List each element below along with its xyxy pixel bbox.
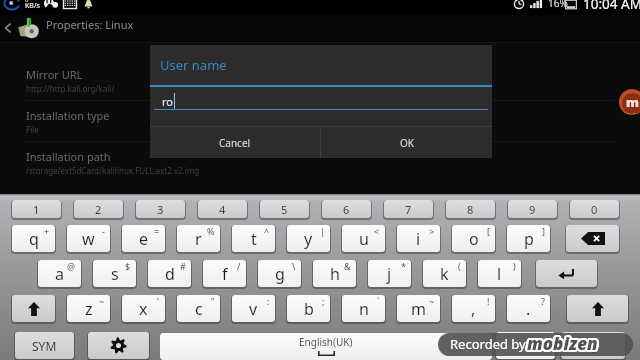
staticText: mobizen bbox=[527, 333, 598, 353]
staticText: c bbox=[195, 298, 203, 320]
staticText: \ bbox=[292, 260, 296, 272]
staticText: ' bbox=[157, 295, 160, 307]
button[interactable]: h bbox=[313, 260, 356, 287]
staticText: u bbox=[359, 228, 369, 250]
staticText: * bbox=[401, 260, 406, 272]
button[interactable]: 6 bbox=[322, 200, 371, 218]
button[interactable]: 3 bbox=[136, 200, 185, 218]
button[interactable]: Mobizen recorder bbox=[619, 89, 640, 115]
button[interactable]: y bbox=[287, 225, 330, 252]
button[interactable]: i bbox=[397, 225, 440, 252]
staticText: p bbox=[524, 228, 534, 250]
button[interactable]: g bbox=[258, 260, 301, 287]
button[interactable]: l bbox=[478, 260, 521, 287]
button[interactable]: Shift bbox=[12, 295, 55, 322]
button[interactable]: d bbox=[148, 260, 191, 287]
staticText: 3 bbox=[157, 202, 164, 217]
button[interactable]: 4 bbox=[198, 200, 247, 218]
staticText: http://http.kali.org/kali/ bbox=[26, 83, 115, 94]
staticText: % bbox=[207, 225, 215, 237]
staticText: 7 bbox=[405, 202, 412, 217]
staticText: ~ bbox=[429, 295, 435, 307]
button[interactable]: Space bbox=[160, 333, 492, 360]
staticText: v bbox=[249, 298, 258, 320]
button[interactable]: SYM bbox=[15, 332, 74, 359]
button[interactable]: f bbox=[203, 260, 246, 287]
staticText: KB/s bbox=[25, 1, 40, 11]
staticText: o bbox=[469, 228, 479, 250]
staticText: / bbox=[237, 260, 241, 272]
staticText: d bbox=[165, 263, 175, 285]
staticText: mobizen bbox=[526, 333, 597, 355]
button[interactable]: Backspace bbox=[566, 225, 619, 252]
staticText: . bbox=[526, 298, 531, 320]
button[interactable]: q bbox=[12, 225, 55, 252]
button[interactable]: 7 bbox=[384, 200, 433, 218]
staticText: Installation type bbox=[26, 108, 110, 123]
button[interactable]: a bbox=[38, 260, 81, 287]
button[interactable]: Input settings bbox=[88, 332, 149, 359]
button[interactable]: 1 bbox=[12, 200, 61, 218]
staticText: mobizen bbox=[525, 333, 596, 354]
button[interactable]: m bbox=[397, 295, 440, 322]
staticText: Mirror URL bbox=[26, 67, 83, 82]
staticText: 6 bbox=[343, 202, 350, 217]
staticText: & bbox=[344, 260, 351, 272]
button[interactable]: 9 bbox=[508, 200, 557, 218]
staticText: f bbox=[222, 263, 228, 285]
button[interactable]: . bbox=[507, 295, 550, 322]
button[interactable]: Voice input bbox=[561, 332, 625, 359]
staticText: | bbox=[320, 225, 325, 237]
button[interactable]: w bbox=[67, 225, 110, 252]
staticText: = bbox=[154, 225, 160, 237]
button[interactable]: n bbox=[342, 295, 385, 322]
button[interactable]: j bbox=[368, 260, 411, 287]
button[interactable]: u bbox=[342, 225, 385, 252]
button[interactable]: k bbox=[423, 260, 466, 287]
button[interactable]: s bbox=[93, 260, 136, 287]
button[interactable]: t bbox=[232, 225, 275, 252]
staticText: y bbox=[304, 228, 313, 250]
button[interactable]: 2 bbox=[74, 200, 123, 218]
button[interactable]: Navigate up bbox=[1, 21, 14, 34]
staticText: mobizen bbox=[528, 333, 599, 354]
button[interactable]: OK bbox=[321, 127, 492, 158]
staticText: e bbox=[139, 228, 149, 250]
staticText: mobizen bbox=[528, 334, 599, 356]
button[interactable]: e bbox=[122, 225, 165, 252]
staticText: ^ bbox=[264, 225, 270, 237]
staticText: mobizen bbox=[527, 333, 598, 355]
button[interactable]: b bbox=[287, 295, 330, 322]
staticText: ? bbox=[541, 295, 545, 307]
button[interactable]: o bbox=[452, 225, 495, 252]
staticText: mobizen bbox=[529, 333, 600, 354]
staticText: $ bbox=[125, 260, 131, 272]
button[interactable]: 5 bbox=[260, 200, 309, 218]
button[interactable]: Cancel bbox=[150, 127, 320, 158]
button[interactable]: Enter bbox=[536, 260, 597, 287]
staticText: 2:43 bbox=[627, 111, 639, 114]
button[interactable]: p bbox=[507, 225, 550, 252]
staticText: @ bbox=[67, 260, 76, 272]
button[interactable]: Shift bbox=[567, 295, 628, 322]
staticText: x bbox=[139, 298, 148, 320]
staticText: t bbox=[251, 228, 257, 250]
staticText: + bbox=[44, 225, 50, 237]
staticText: : bbox=[267, 295, 270, 307]
staticText: s bbox=[111, 263, 119, 285]
button[interactable]: c bbox=[177, 295, 220, 322]
staticText: File bbox=[26, 124, 39, 135]
staticText: mobizen bbox=[526, 333, 597, 353]
button[interactable]: r bbox=[177, 225, 220, 252]
button[interactable]: v bbox=[232, 295, 275, 322]
staticText: ` bbox=[377, 295, 380, 307]
button[interactable]: 0 bbox=[570, 200, 619, 218]
staticText: 5 bbox=[281, 202, 288, 217]
button[interactable]: , bbox=[452, 295, 495, 322]
button[interactable]: . bbox=[496, 332, 555, 359]
button[interactable]: z bbox=[67, 295, 110, 322]
button[interactable]: x bbox=[122, 295, 165, 322]
staticText: mobizen bbox=[526, 333, 597, 354]
button[interactable]: 8 bbox=[446, 200, 495, 218]
staticText: Cancel bbox=[219, 136, 251, 150]
